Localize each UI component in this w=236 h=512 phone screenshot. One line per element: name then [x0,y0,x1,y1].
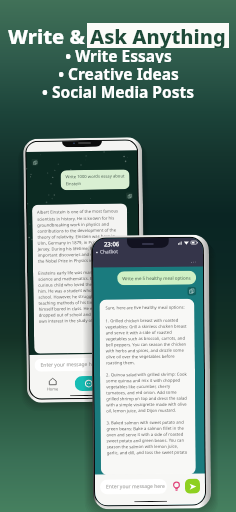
staticText: Home [47,386,59,392]
button[interactable]: Copy [31,159,38,166]
button[interactable]: Send [185,479,200,494]
staticText: Enter your message here [40,361,99,369]
staticText: Chat [95,381,107,388]
staticText: • Creative Ideas [58,63,179,81]
staticText: Enter your message here [106,483,165,490]
button[interactable]: Copy response [126,192,133,199]
staticText: Write & [8,23,85,48]
staticText: 23:06 [104,240,120,248]
staticText: Ask Anything [90,23,226,48]
button[interactable]: Home [30,374,75,394]
staticText: Chatbot [100,248,119,255]
button[interactable]: Enter your message here [34,357,136,372]
staticText: Write 1000 words essay about Einstein [65,173,125,186]
staticText: Write me 5 healthy meal options [122,275,191,281]
staticText: Albert Einstein is one of the most famou… [37,208,124,324]
button[interactable]: Ideas [170,480,183,493]
button[interactable]: Enter your message here [100,479,167,494]
staticText: • Write Essays [65,45,172,63]
staticText: • Social Media Posts [42,81,194,99]
button[interactable]: Chat [75,375,117,391]
button[interactable]: Copy [187,287,196,296]
staticText: Sure, here are five healthy meal options… [105,305,190,455]
